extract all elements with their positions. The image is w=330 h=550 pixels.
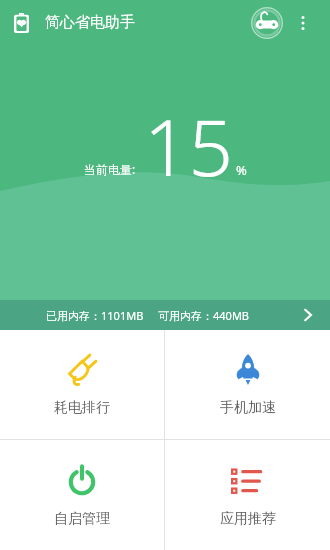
other: App recommendations — [231, 463, 265, 497]
other: Autostart manager — [65, 463, 99, 497]
staticText: 已用内存：1101MB — [46, 308, 144, 323]
other: Battery ranking — [65, 352, 99, 386]
staticText: 自启管理 — [54, 510, 110, 528]
staticText: 简心省电助手 — [45, 13, 135, 32]
button[interactable]: Autostart manager — [0, 440, 164, 550]
staticText: 15 — [144, 93, 234, 199]
staticText: 当前电量: — [84, 161, 136, 177]
staticText: 耗电排行 — [54, 399, 110, 417]
staticText: % — [236, 161, 247, 179]
staticText: 可用内存：440MB — [158, 308, 250, 323]
staticText: 手机加速 — [220, 399, 276, 417]
button[interactable]: More options — [286, 6, 320, 40]
button[interactable]: Phone boost — [165, 330, 330, 439]
staticText: 应用推荐 — [220, 510, 276, 528]
button[interactable]: Battery ranking — [0, 330, 164, 439]
button[interactable]: App recommendations — [165, 440, 330, 550]
button[interactable]: Game boost — [248, 4, 286, 42]
other: Phone boost — [231, 352, 265, 386]
button[interactable]: 已用内存：1101MB — [0, 300, 330, 330]
